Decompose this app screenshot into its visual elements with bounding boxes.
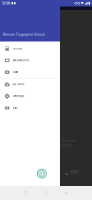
staticText: My Accounts <box>12 59 28 62</box>
staticText: Scan <box>12 71 18 74</box>
button[interactable]: Exit <box>0 102 60 114</box>
button[interactable]: Recents <box>19 186 33 200</box>
button[interactable]: My Accounts <box>0 54 60 66</box>
button[interactable]: Home <box>39 186 53 200</box>
staticText: Unlock <box>12 47 21 50</box>
button[interactable]: Back <box>59 186 73 200</box>
button[interactable]: Settings <box>0 90 60 102</box>
staticText: the My <box>61 143 72 147</box>
button[interactable]: Unlock with fingerprint <box>35 167 49 181</box>
staticText: Exit <box>12 106 17 110</box>
button[interactable]: Go PRO! <box>0 78 60 90</box>
staticText: must be <box>61 139 74 143</box>
staticText: Remote Fingerprint Unlock <box>3 33 45 36</box>
staticText: Settings <box>12 95 23 98</box>
staticText: Go PRO! <box>12 83 24 86</box>
button[interactable]: Scan <box>0 66 60 78</box>
button[interactable]: Unlock <box>0 43 60 54</box>
staticText: 12:06 <box>2 1 10 5</box>
